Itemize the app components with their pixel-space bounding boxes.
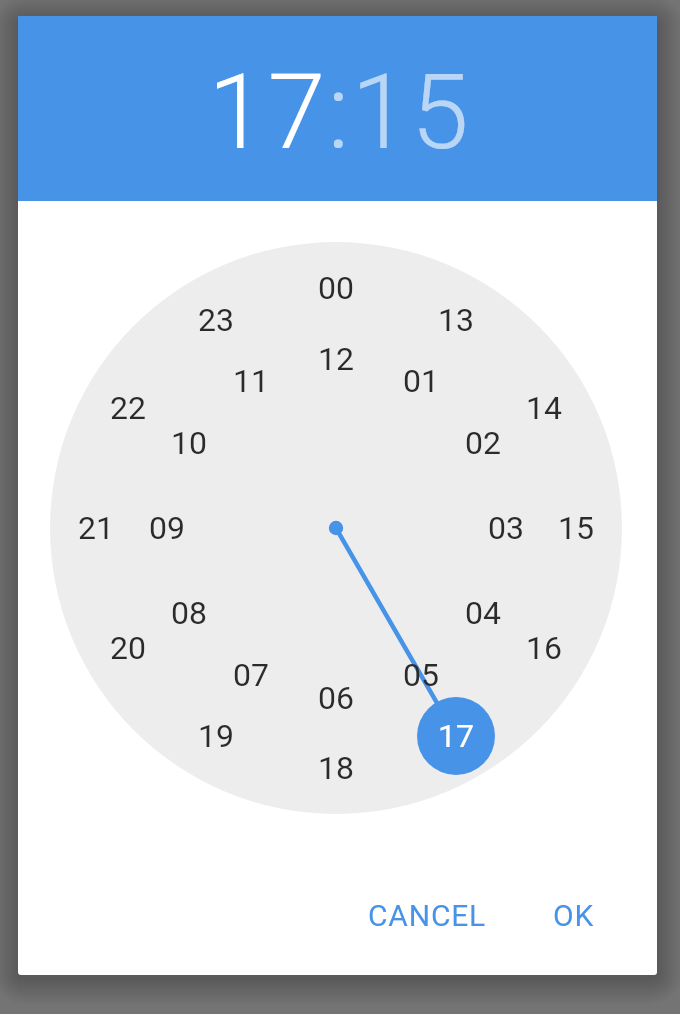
button[interactable]: 06 — [296, 674, 376, 722]
staticText: 09 — [149, 509, 185, 547]
button[interactable]: 08 — [149, 589, 229, 637]
staticText: 22 — [110, 389, 146, 427]
button[interactable]: 15 — [536, 504, 616, 552]
button[interactable]: 23 — [176, 296, 256, 344]
button[interactable]: 18 — [296, 744, 376, 792]
staticText: 04 — [465, 594, 501, 632]
button[interactable]: 01 — [381, 357, 461, 405]
staticText: 17 — [438, 717, 474, 755]
staticText: 11 — [233, 362, 269, 400]
staticText: 07 — [233, 656, 269, 694]
staticText: CANCEL — [368, 898, 487, 933]
button[interactable]: 22 — [88, 384, 168, 432]
staticText: 02 — [465, 424, 501, 462]
button[interactable]: 21 — [56, 504, 136, 552]
staticText: 17:15 — [208, 52, 471, 174]
staticText: 23 — [198, 301, 234, 339]
button[interactable]: 00 — [296, 264, 376, 312]
staticText: 14 — [526, 389, 562, 427]
staticText: 10 — [171, 424, 207, 462]
button[interactable]: 09 — [127, 504, 207, 552]
staticText: 01 — [403, 362, 439, 400]
button[interactable]: 02 — [443, 419, 523, 467]
staticText: OK — [553, 898, 595, 933]
staticText: 20 — [110, 629, 146, 667]
button[interactable]: 14 — [504, 384, 584, 432]
button[interactable]: 12 — [296, 335, 376, 383]
staticText: 08 — [171, 594, 207, 632]
button[interactable]: 17 — [417, 697, 495, 775]
staticText: 13 — [438, 301, 474, 339]
staticText: 12 — [318, 340, 354, 378]
button[interactable]: 03 — [466, 504, 546, 552]
staticText: 06 — [318, 679, 354, 717]
button[interactable]: 05 — [381, 651, 461, 699]
staticText: 03 — [488, 509, 524, 547]
staticText: 21 — [78, 509, 114, 547]
staticText: 16 — [526, 629, 562, 667]
button[interactable]: 20 — [88, 624, 168, 672]
staticText: 19 — [198, 717, 234, 755]
button[interactable]: OK — [514, 891, 634, 939]
staticText: 05 — [403, 656, 439, 694]
staticText: 15 — [558, 509, 594, 547]
button[interactable]: 11 — [211, 357, 291, 405]
button[interactable]: 10 — [149, 419, 229, 467]
button[interactable]: CANCEL — [347, 891, 507, 939]
button[interactable]: 19 — [176, 712, 256, 760]
button[interactable]: 04 — [443, 589, 523, 637]
button[interactable]: 13 — [416, 296, 496, 344]
button[interactable]: 16 — [504, 624, 584, 672]
staticText: 00 — [318, 269, 354, 307]
button[interactable]: 07 — [211, 651, 291, 699]
staticText: 18 — [318, 749, 354, 787]
